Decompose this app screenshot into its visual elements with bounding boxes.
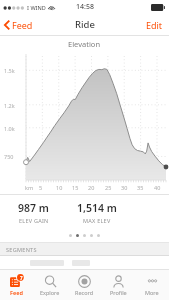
staticText: 1,514 m: [77, 201, 117, 215]
button[interactable]: Explore: [33, 270, 67, 300]
other: Record: [78, 275, 91, 288]
other: More: [146, 275, 159, 288]
staticText: 30: [121, 184, 128, 191]
button[interactable]: [0, 256, 169, 268]
staticText: 25: [105, 184, 112, 191]
button[interactable]: Feed: [0, 16, 39, 34]
staticText: Elevation: [68, 39, 101, 49]
staticText: MAX ELEV: [83, 217, 111, 224]
button[interactable]: Feed, 7 new: [0, 270, 33, 300]
staticText: 5: [39, 184, 43, 191]
staticText: SEGMENTS: [6, 246, 37, 253]
staticText: km: [25, 184, 34, 191]
staticText: 750: [4, 153, 14, 160]
staticText: Feed: [12, 19, 33, 31]
staticText: More: [145, 289, 159, 296]
other: Profile: [112, 275, 125, 288]
staticText: 20: [88, 184, 95, 191]
staticText: Record: [75, 289, 94, 296]
button[interactable]: Edit: [140, 15, 169, 35]
staticText: Explore: [40, 289, 60, 296]
staticText: Ride: [75, 18, 95, 31]
other: Feed, 7 new: [10, 275, 23, 288]
staticText: 1.0k: [4, 125, 15, 132]
staticText: I WIND: [27, 4, 46, 11]
staticText: 15: [72, 184, 79, 191]
staticText: 1.2k: [4, 102, 15, 109]
staticText: 7: [20, 275, 23, 281]
staticText: 1.5k: [4, 67, 15, 74]
staticText: Edit: [146, 19, 163, 31]
staticText: 35: [137, 184, 144, 191]
button[interactable]: More: [135, 270, 169, 300]
staticText: 10: [56, 184, 63, 191]
other: Explore: [44, 275, 57, 288]
staticText: 40: [154, 184, 161, 191]
button[interactable]: Record: [67, 270, 101, 300]
staticText: 14:58: [76, 2, 94, 12]
staticText: Profile: [110, 289, 127, 296]
staticText: Feed: [10, 289, 23, 296]
staticText: ELEV GAIN: [19, 217, 49, 224]
button[interactable]: Profile: [101, 270, 135, 300]
staticText: 987 m: [18, 201, 49, 215]
